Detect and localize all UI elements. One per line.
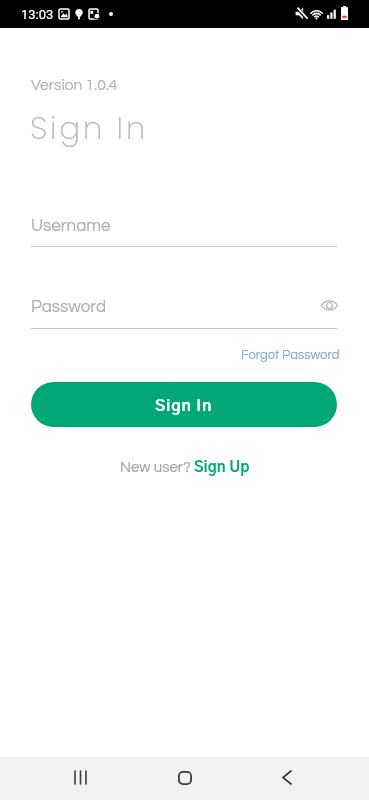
staticText: Version 1.0.4 — [31, 77, 118, 93]
button[interactable]: Show password — [314, 291, 342, 319]
button[interactable]: Home — [161, 757, 209, 800]
staticText: Username — [31, 217, 111, 235]
button[interactable]: Forgot Password — [241, 348, 340, 361]
staticText: Password — [31, 298, 107, 316]
staticText: New user? — [120, 460, 194, 475]
button[interactable]: Recents — [56, 757, 104, 800]
staticText: Forgot Password — [241, 348, 340, 361]
button[interactable]: Sign In — [31, 382, 337, 427]
button[interactable]: New user? — [120, 460, 250, 475]
staticText: Sign Up — [194, 460, 250, 475]
button[interactable]: Back — [265, 757, 313, 800]
staticText: Sign In — [30, 106, 149, 149]
staticText: 13:03 — [21, 7, 54, 22]
staticText: Sign In — [155, 398, 213, 414]
